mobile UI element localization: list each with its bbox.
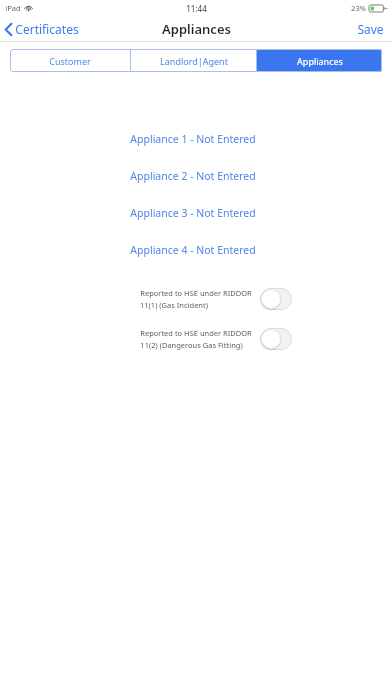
- button[interactable]: Customer: [10, 49, 130, 72]
- button[interactable]: Reported to HSE under RIDDOR: [140, 288, 292, 310]
- staticText: 23%: [351, 3, 366, 13]
- staticText: Landlord|Agent: [160, 55, 228, 67]
- staticText: Appliance 4 - Not Entered: [130, 243, 256, 257]
- staticText: 11(2) (Dangerous Gas Fitting): [140, 340, 243, 350]
- staticText: 11:44: [186, 3, 207, 14]
- staticText: iPad: [5, 3, 21, 13]
- button[interactable]: Toggle reported to HSE: [260, 288, 292, 310]
- staticText: Appliances: [162, 20, 231, 38]
- button[interactable]: Appliance 4 - Not Entered: [118, 238, 268, 262]
- button[interactable]: Landlord|Agent: [131, 49, 256, 72]
- button[interactable]: Appliance 3 - Not Entered: [118, 201, 268, 225]
- staticText: 11(1) (Gas Incident): [140, 300, 208, 310]
- staticText: Reported to HSE under RIDDOR: [140, 288, 252, 298]
- staticText: Reported to HSE under RIDDOR: [140, 328, 252, 338]
- staticText: Customer: [49, 55, 91, 67]
- button[interactable]: Save: [347, 18, 392, 40]
- button[interactable]: Toggle reported to HSE: [260, 328, 292, 350]
- button[interactable]: Appliance 2 - Not Entered: [118, 164, 268, 188]
- staticText: Appliance 2 - Not Entered: [130, 169, 256, 183]
- staticText: Certificates: [15, 21, 79, 37]
- button[interactable]: Appliance 1 - Not Entered: [118, 127, 268, 151]
- staticText: Save: [357, 21, 384, 37]
- button[interactable]: Certificates: [0, 18, 87, 40]
- staticText: Appliance 3 - Not Entered: [130, 206, 256, 220]
- button[interactable]: Reported to HSE under RIDDOR: [140, 328, 292, 350]
- staticText: Appliances: [297, 55, 343, 67]
- staticText: Appliance 1 - Not Entered: [130, 132, 256, 146]
- button[interactable]: Appliances: [257, 49, 382, 72]
